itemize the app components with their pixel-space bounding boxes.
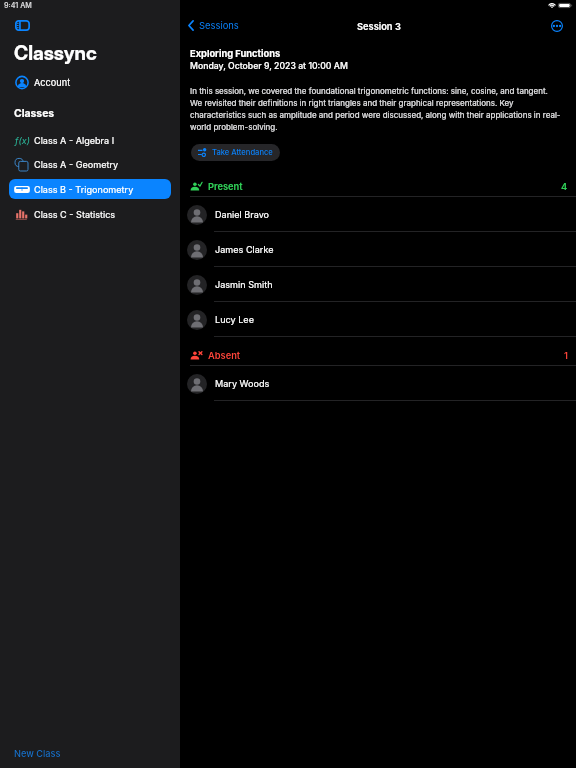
button[interactable]: Toggle sidebar bbox=[15, 20, 30, 31]
button[interactable]: New Class bbox=[0, 742, 180, 768]
staticText: Classync bbox=[14, 41, 97, 65]
button[interactable]: Account bbox=[9, 72, 171, 92]
staticText: f(x) bbox=[15, 135, 30, 146]
button[interactable]: Mary Woods bbox=[0, 366, 576, 401]
staticText: 4 bbox=[561, 181, 568, 192]
staticText: 9:41 AM bbox=[4, 1, 32, 10]
button[interactable]: Jasmin Smith bbox=[0, 267, 576, 302]
staticText: Jasmin Smith bbox=[215, 279, 273, 290]
staticText: Monday, October 9, 2023 at 10:00 AM bbox=[190, 61, 348, 72]
button[interactable]: Lucy Lee bbox=[0, 302, 576, 337]
staticText: Lucy Lee bbox=[215, 314, 254, 325]
button[interactable]: Daniel Bravo bbox=[0, 197, 576, 232]
staticText: Class A - Algebra I bbox=[34, 135, 115, 146]
button[interactable]: f(x) bbox=[9, 130, 171, 150]
button[interactable]: Take Attendance bbox=[191, 144, 280, 161]
button[interactable]: Class C - Statistics bbox=[9, 204, 171, 224]
staticText: Sessions bbox=[199, 20, 239, 31]
staticText: Class A - Geometry bbox=[34, 159, 119, 170]
button[interactable]: More options bbox=[549, 18, 565, 34]
staticText: James Clarke bbox=[215, 244, 274, 255]
button[interactable]: Class B - Trigonometry bbox=[9, 179, 171, 199]
staticText: 1 bbox=[564, 350, 568, 361]
staticText: In this session, we covered the foundati… bbox=[190, 86, 562, 132]
button[interactable]: James Clarke bbox=[0, 232, 576, 267]
staticText: Daniel Bravo bbox=[215, 209, 270, 220]
staticText: Mary Woods bbox=[215, 378, 270, 389]
button[interactable]: Class A - Geometry bbox=[9, 154, 171, 174]
staticText: Class C - Statistics bbox=[34, 209, 116, 220]
staticText: Exploring Functions bbox=[190, 48, 281, 59]
staticText: Absent bbox=[208, 350, 241, 361]
staticText: Account bbox=[34, 77, 71, 88]
staticText: Class B - Trigonometry bbox=[34, 184, 134, 195]
staticText: Session 3 bbox=[357, 21, 401, 32]
staticText: Classes bbox=[14, 107, 55, 120]
staticText: Take Attendance bbox=[212, 148, 273, 157]
button[interactable]: Sessions bbox=[185, 18, 242, 33]
staticText: Present bbox=[208, 181, 243, 192]
staticText: New Class bbox=[14, 748, 61, 759]
